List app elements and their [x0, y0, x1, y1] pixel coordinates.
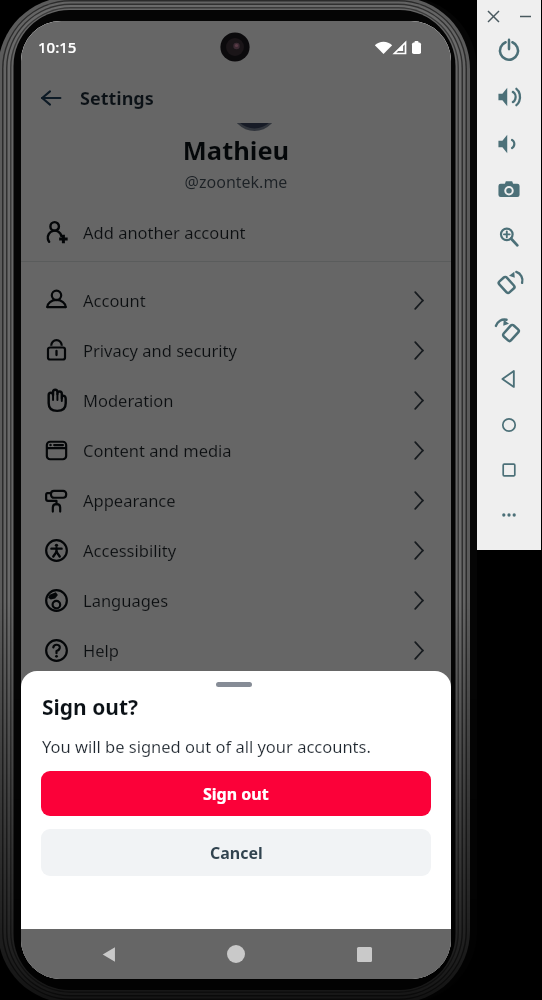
staticText: Appearance [83, 489, 414, 511]
staticText: 10:15 [38, 37, 77, 57]
button[interactable]: Back [477, 357, 541, 401]
button[interactable]: Rotate right [477, 309, 541, 353]
button[interactable]: Languages [21, 575, 451, 625]
button[interactable]: Cancel [41, 829, 431, 876]
button[interactable]: Privacy and security [21, 325, 451, 375]
staticText: Help [83, 639, 414, 661]
button[interactable]: Back [21, 75, 80, 121]
button[interactable]: Volume down [477, 122, 541, 166]
button[interactable]: Rotate left [477, 261, 541, 305]
button[interactable]: Content and media [21, 425, 451, 475]
staticText: Moderation [83, 389, 414, 411]
button[interactable]: Minimize [509, 0, 541, 32]
button[interactable]: Moderation [21, 375, 451, 425]
button[interactable]: Sign out [41, 771, 431, 816]
button[interactable]: Home [196, 929, 276, 979]
button[interactable]: Recents [324, 929, 404, 979]
button[interactable]: Power [477, 28, 541, 72]
staticText: Privacy and security [83, 339, 414, 361]
button[interactable]: Account [21, 275, 451, 325]
staticText: Sign out? [42, 693, 139, 722]
button[interactable]: Appearance [21, 475, 451, 525]
button[interactable]: More options [477, 493, 541, 537]
button[interactable]: Zoom in [477, 215, 541, 259]
button[interactable]: Overview [477, 448, 541, 492]
staticText: Accessibility [83, 539, 414, 561]
staticText: Mathieu [21, 133, 451, 168]
staticText: Account [83, 289, 414, 311]
button[interactable]: Add another account [21, 207, 451, 257]
button[interactable]: Volume up [477, 75, 541, 119]
staticText: Languages [83, 589, 414, 611]
button[interactable]: Close [477, 0, 509, 32]
button[interactable]: Accessibility [21, 525, 451, 575]
button[interactable]: Help [21, 625, 451, 675]
button[interactable]: Back [69, 929, 149, 979]
staticText: You will be signed out of all your accou… [42, 735, 371, 757]
staticText: Content and media [83, 439, 414, 461]
button[interactable]: Home [477, 403, 541, 447]
staticText: Sign out [203, 783, 269, 805]
button[interactable]: Screenshot [477, 168, 541, 212]
staticText: Cancel [210, 842, 263, 864]
staticText: Add another account [83, 221, 246, 243]
staticText: @zoontek.me [21, 171, 451, 193]
staticText: Settings [80, 86, 154, 111]
